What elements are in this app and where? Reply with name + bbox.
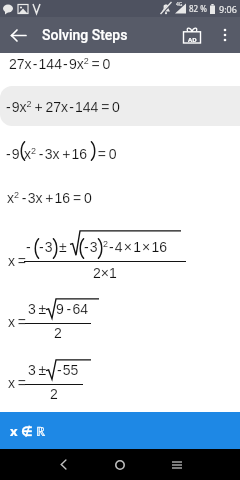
staticText: - 9x2 + 27x - 144 = 0 bbox=[6, 99, 120, 115]
button[interactable]: x = bbox=[0, 351, 240, 409]
button[interactable]: - 9x2 + 27x - 144 = 0 bbox=[0, 87, 240, 127]
staticText: Solving Steps bbox=[42, 27, 128, 43]
staticText: = 0 bbox=[95, 146, 117, 162]
staticText: x = bbox=[8, 314, 26, 330]
staticText: x ∉ ℝ bbox=[10, 422, 46, 440]
staticText: - 9 bbox=[6, 146, 20, 162]
button[interactable]: Back bbox=[40, 449, 86, 480]
staticText: - 3 bbox=[39, 239, 53, 255]
staticText: - 3 bbox=[84, 239, 98, 255]
button[interactable]: x ∉ ℝ bbox=[0, 412, 240, 449]
staticText: ± bbox=[59, 239, 67, 255]
staticText: 2×1 bbox=[93, 265, 117, 281]
button[interactable]: Recent apps bbox=[154, 449, 200, 480]
staticText: 2 bbox=[50, 386, 58, 402]
staticText: x2 - 3x + 16 bbox=[24, 146, 88, 162]
staticText: 4G bbox=[176, 1, 183, 8]
button[interactable]: Watch ad bbox=[174, 17, 210, 53]
button[interactable]: x2 - 3x + 16 = 0 bbox=[0, 178, 240, 218]
button[interactable]: x = bbox=[0, 290, 240, 348]
staticText: - 4 × 1 × 16 bbox=[109, 239, 168, 255]
button[interactable]: Back bbox=[0, 17, 36, 53]
button[interactable]: - 9 bbox=[0, 133, 240, 173]
staticText: x = bbox=[8, 253, 26, 269]
staticText: - 55 bbox=[57, 362, 79, 378]
staticText: x2 - 3x + 16 = 0 bbox=[7, 190, 92, 206]
button[interactable]: More options bbox=[210, 20, 240, 50]
staticText: 82 % bbox=[189, 3, 207, 14]
staticText: 2 bbox=[103, 239, 109, 249]
button[interactable]: 27x - 144 - 9x2 = 0 bbox=[0, 44, 240, 84]
staticText: - bbox=[26, 239, 31, 255]
staticText: 3 ± bbox=[28, 362, 47, 378]
staticText: 27x - 144 - 9x2 = 0 bbox=[9, 56, 111, 72]
staticText: 9:06 bbox=[219, 3, 237, 15]
button[interactable]: Home bbox=[97, 449, 143, 480]
staticText: AD bbox=[188, 36, 197, 44]
staticText: x = bbox=[8, 375, 26, 391]
staticText: 9 - 64 bbox=[56, 301, 88, 317]
staticText: 2 bbox=[54, 325, 62, 341]
staticText: 3 ± bbox=[28, 301, 47, 317]
button[interactable]: x = bbox=[0, 215, 240, 287]
